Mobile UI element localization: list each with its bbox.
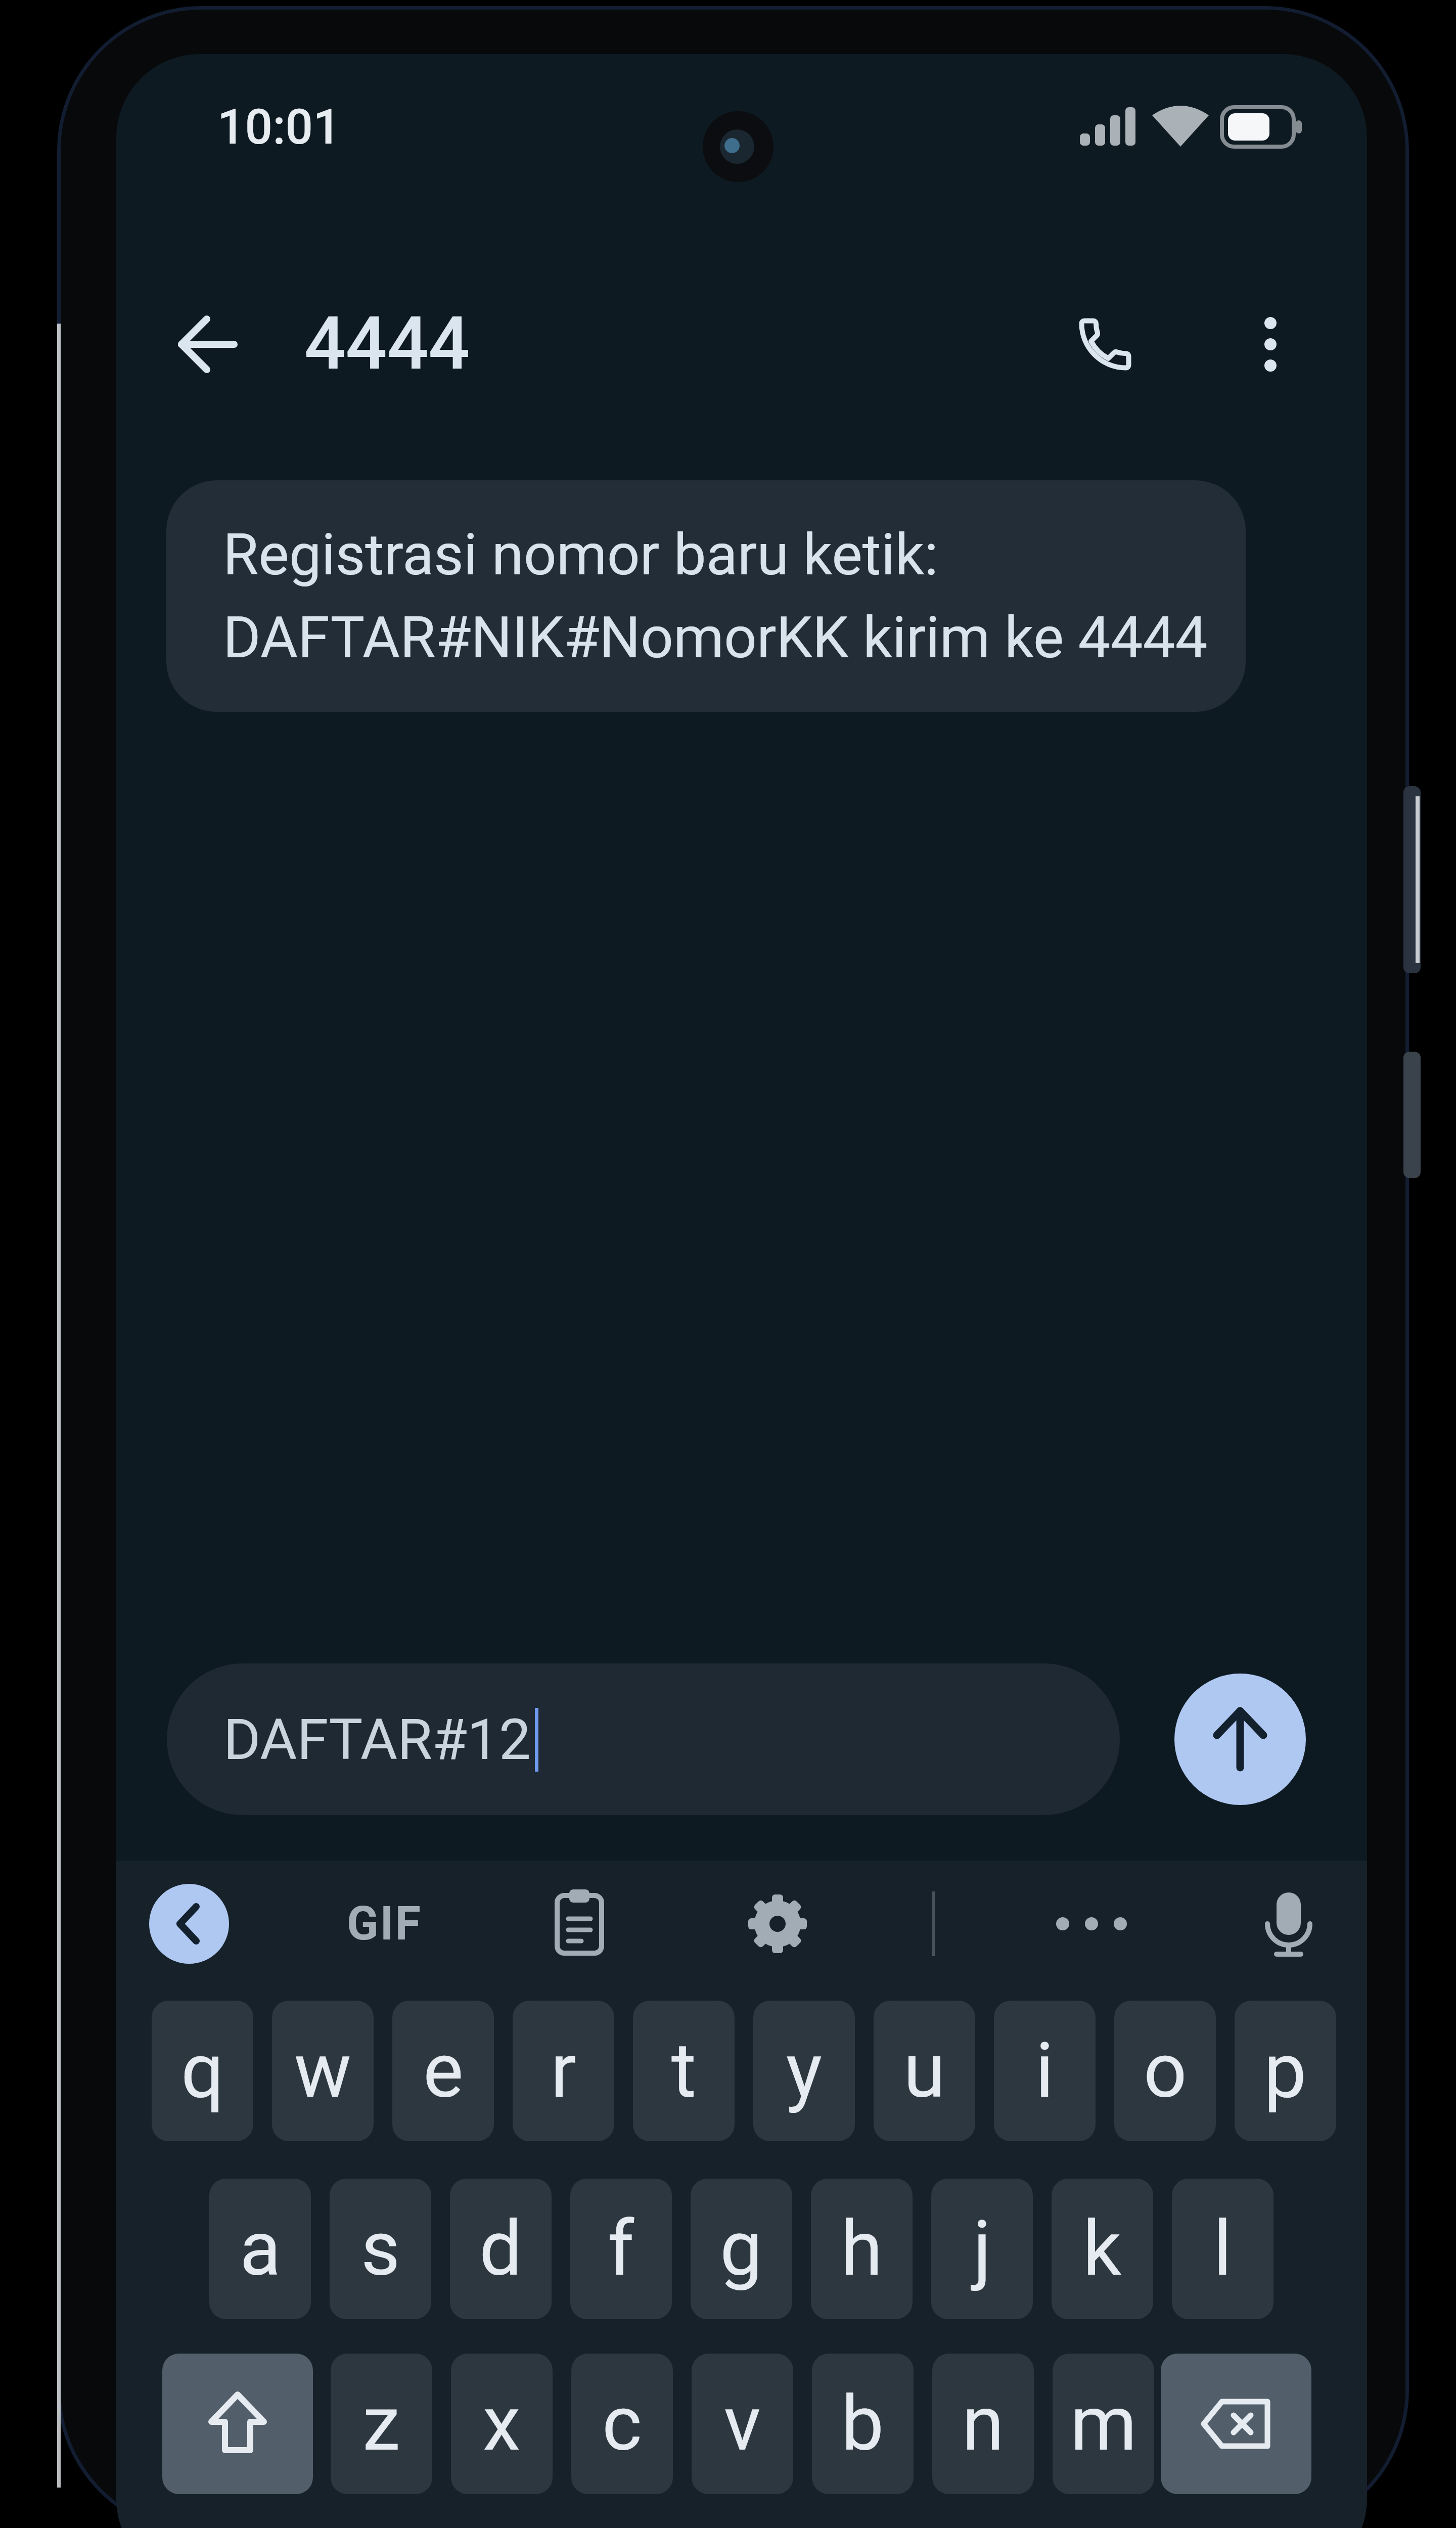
button[interactable]: n <box>932 2354 1034 2494</box>
button[interactable]: m <box>1053 2354 1154 2494</box>
button[interactable] <box>162 2354 313 2494</box>
staticText: k <box>1083 2204 1122 2293</box>
staticText: g <box>720 2204 763 2293</box>
button[interactable]: r <box>513 2001 614 2141</box>
staticText: w <box>294 2026 351 2115</box>
button[interactable]: p <box>1235 2001 1336 2141</box>
button[interactable]: GIF <box>329 1879 440 1968</box>
staticText: l <box>1213 2204 1232 2293</box>
button[interactable] <box>1174 1674 1306 1805</box>
staticText: 4444 <box>304 301 470 386</box>
staticText: t <box>671 2026 697 2115</box>
button[interactable]: t <box>633 2001 735 2141</box>
button[interactable]: e <box>392 2001 494 2141</box>
button[interactable]: z <box>331 2354 432 2494</box>
staticText: i <box>1035 2026 1054 2115</box>
button[interactable] <box>1047 1879 1136 1968</box>
staticText: v <box>724 2379 761 2468</box>
staticText: x <box>483 2379 521 2468</box>
staticText: o <box>1144 2026 1187 2115</box>
staticText: r <box>551 2026 576 2115</box>
button[interactable] <box>1235 309 1306 380</box>
staticText: a <box>240 2204 281 2293</box>
button[interactable]: g <box>691 2179 792 2319</box>
staticText: e <box>423 2026 464 2115</box>
staticText: GIF <box>347 1897 422 1951</box>
staticText: q <box>181 2026 224 2115</box>
button[interactable] <box>535 1879 624 1968</box>
staticText: f <box>608 2204 634 2293</box>
staticText: y <box>786 2026 822 2115</box>
button[interactable] <box>172 309 243 380</box>
staticText: z <box>362 2379 400 2468</box>
button[interactable]: d <box>450 2179 552 2319</box>
button[interactable]: x <box>451 2354 553 2494</box>
staticText: m <box>1070 2379 1137 2468</box>
button[interactable]: u <box>874 2001 975 2141</box>
button[interactable]: s <box>330 2179 431 2319</box>
staticText: d <box>479 2204 522 2293</box>
staticText: DAFTAR#12 <box>223 1706 531 1773</box>
button[interactable]: j <box>931 2179 1033 2319</box>
button[interactable] <box>1070 309 1141 380</box>
button[interactable]: l <box>1172 2179 1273 2319</box>
button[interactable]: o <box>1114 2001 1216 2141</box>
staticText: Registrasi nomor baru ketik: DAFTAR#NIK#… <box>223 521 1208 671</box>
staticText: j <box>973 2204 991 2293</box>
staticText: h <box>841 2204 883 2293</box>
staticText: n <box>962 2379 1004 2468</box>
button[interactable]: c <box>571 2354 673 2494</box>
staticText: p <box>1264 2026 1307 2115</box>
button[interactable] <box>1244 1879 1333 1968</box>
staticText: b <box>841 2379 884 2468</box>
staticText: u <box>903 2026 945 2115</box>
staticText: s <box>361 2204 400 2293</box>
button[interactable]: b <box>812 2354 914 2494</box>
staticText: 10:01 <box>217 99 341 156</box>
staticText: c <box>602 2379 642 2468</box>
button[interactable]: i <box>994 2001 1096 2141</box>
button[interactable] <box>1161 2354 1311 2494</box>
button[interactable] <box>149 1884 229 1964</box>
button[interactable]: DAFTAR#12 <box>167 1663 1120 1815</box>
button[interactable]: q <box>152 2001 253 2141</box>
button[interactable]: v <box>692 2354 793 2494</box>
button[interactable]: h <box>811 2179 913 2319</box>
button[interactable]: k <box>1052 2179 1153 2319</box>
button[interactable] <box>733 1879 822 1968</box>
button[interactable]: f <box>570 2179 672 2319</box>
button[interactable]: y <box>753 2001 855 2141</box>
button[interactable]: a <box>209 2179 311 2319</box>
button[interactable]: w <box>272 2001 374 2141</box>
